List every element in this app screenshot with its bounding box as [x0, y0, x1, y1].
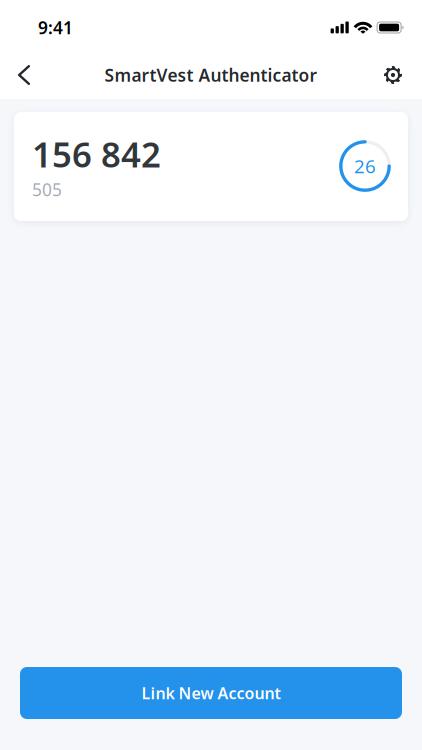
button[interactable]: Back — [2, 53, 46, 97]
staticText: 156 842 — [32, 131, 161, 177]
button[interactable]: Settings — [371, 53, 415, 97]
staticText: 505 — [32, 178, 62, 201]
staticText: Link New Account — [141, 682, 280, 704]
staticText: 9:41 — [38, 16, 73, 39]
button[interactable]: Link New Account — [20, 667, 402, 719]
staticText: SmartVest Authenticator — [104, 63, 317, 86]
staticText: 26 — [354, 154, 376, 178]
